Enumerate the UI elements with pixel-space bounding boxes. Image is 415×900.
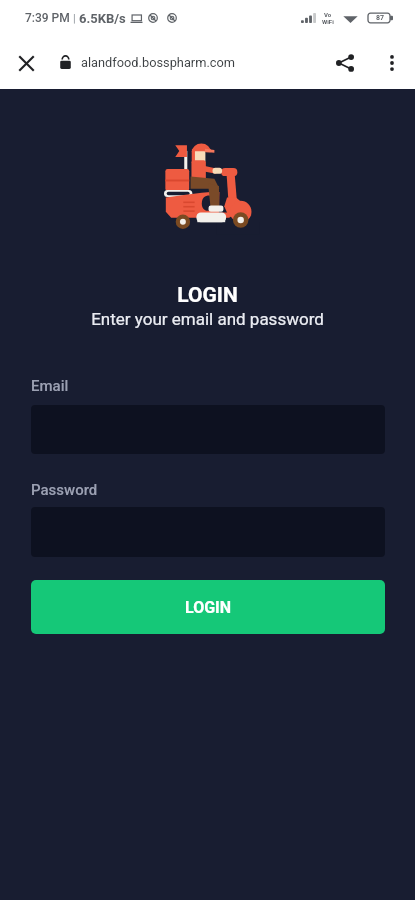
staticText: 6.5KB/s (79, 11, 126, 26)
staticText: | (73, 12, 76, 25)
staticText: 87 (376, 14, 385, 22)
staticText: Vo (324, 11, 332, 18)
staticText: LOGIN (177, 283, 238, 308)
staticText: Password (31, 481, 98, 499)
button[interactable]: Share (321, 39, 369, 87)
staticText: WiFi (322, 18, 334, 25)
button[interactable]: LOGIN (31, 580, 385, 634)
button[interactable]: More options (369, 40, 415, 86)
staticText: LOGIN (185, 598, 232, 617)
staticText: 7:39 PM (25, 11, 70, 25)
staticText: Email (31, 377, 69, 395)
staticText: alandfood.bosspharm.com (81, 55, 235, 70)
staticText: Enter your email and password (91, 309, 324, 329)
button[interactable]: Close (0, 37, 52, 89)
